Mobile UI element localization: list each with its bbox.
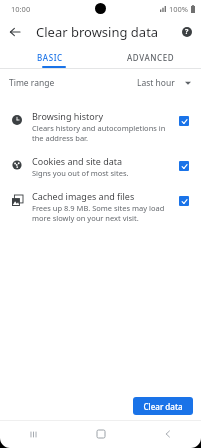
- staticText: BASIC: [37, 52, 63, 63]
- button[interactable]: Help: [173, 18, 201, 46]
- button[interactable]: BASIC: [0, 46, 100, 68]
- staticText: ?: [185, 27, 189, 37]
- button[interactable]: Back: [0, 17, 30, 46]
- staticText: ADVANCED: [127, 52, 175, 63]
- staticText: Frees up 8.9 MB. Some sites may load mor…: [32, 203, 169, 223]
- staticText: Time range: [9, 77, 55, 89]
- button[interactable]: Checked: [179, 196, 189, 206]
- staticText: Cookies and site data: [32, 155, 123, 167]
- staticText: 100%: [169, 4, 189, 14]
- staticText: Clear data: [143, 401, 183, 412]
- staticText: Signs you out of most sites.: [32, 168, 129, 178]
- staticText: Cached images and files: [32, 190, 135, 202]
- button[interactable]: Cookies and site data: [0, 149, 201, 184]
- button[interactable]: Time range: [0, 69, 201, 96]
- staticText: Clear browsing data: [36, 23, 159, 41]
- staticText: 10:00: [11, 4, 31, 14]
- staticText: Browsing history: [32, 110, 103, 122]
- button[interactable]: Clear data: [133, 397, 193, 415]
- button[interactable]: Checked: [179, 116, 189, 126]
- staticText: Clears history and autocompletions in th…: [32, 123, 169, 143]
- button[interactable]: Browsing history: [0, 104, 201, 149]
- button[interactable]: ADVANCED: [100, 46, 201, 68]
- button[interactable]: Back: [134, 420, 201, 448]
- button[interactable]: Checked: [179, 161, 189, 171]
- button[interactable]: Home: [67, 420, 134, 448]
- button[interactable]: Cached images and files: [0, 184, 201, 229]
- staticText: Last hour: [137, 77, 175, 89]
- button[interactable]: Recent apps: [0, 420, 67, 448]
